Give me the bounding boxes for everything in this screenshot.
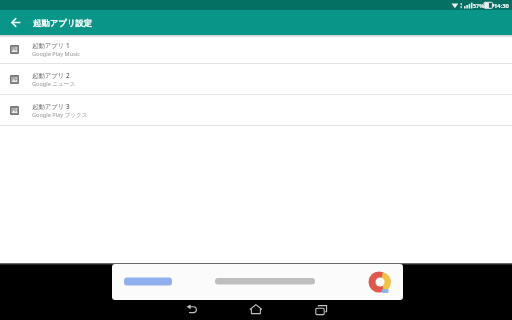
staticText: 起動アプリ 2 [32,71,70,80]
button[interactable]: 起動アプリ 3 [0,95,512,126]
staticText: 14:30 [494,2,509,10]
button[interactable] [9,16,22,29]
staticText: 57% [473,2,485,9]
staticText: 起動アプリ設定 [33,18,93,28]
staticText: 起動アプリ 3 [32,102,70,111]
staticText: 起動アプリ 1 [32,41,70,50]
button[interactable] [112,264,403,300]
button[interactable]: 起動アプリ 2 [0,64,512,95]
staticText: Google Play ブックス [32,111,88,119]
staticText: Google ニュース [32,80,76,88]
button[interactable] [236,300,276,320]
button[interactable] [301,300,341,320]
button[interactable] [171,300,211,320]
staticText: Google Play Music [32,50,80,58]
button[interactable]: 起動アプリ 1 [0,35,512,64]
